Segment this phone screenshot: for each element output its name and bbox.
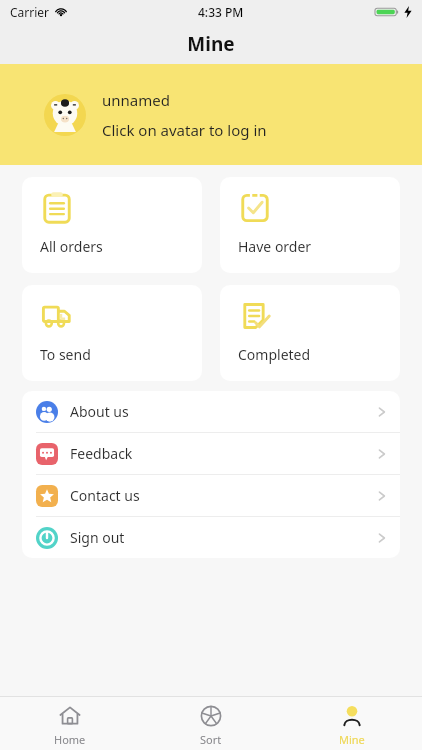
button[interactable]: Sign out (22, 517, 400, 558)
button[interactable]: Sort (140, 697, 281, 750)
staticText: 4:33 PM (198, 4, 244, 20)
staticText: Sign out (70, 528, 125, 547)
staticText: Home (54, 732, 86, 747)
button[interactable]: Mine (281, 697, 422, 750)
staticText: Sort (200, 732, 222, 747)
button[interactable]: Feedback (22, 433, 400, 474)
button[interactable]: Completed (220, 285, 400, 381)
staticText: Mine (339, 732, 365, 747)
staticText: Contact us (70, 486, 140, 505)
button[interactable]: Contact us (22, 475, 400, 516)
button[interactable]: All orders (22, 177, 202, 273)
button[interactable]: Home (0, 697, 140, 750)
button[interactable]: To send (22, 285, 202, 381)
staticText: About us (70, 402, 129, 421)
staticText: Carrier (10, 4, 50, 20)
staticText: Click on avatar to log in (102, 120, 267, 140)
button[interactable]: Avatar, tap to log in (44, 94, 86, 136)
staticText: Feedback (70, 444, 133, 463)
staticText: To send (40, 345, 91, 364)
staticText: Mine (187, 31, 235, 57)
staticText: All orders (40, 237, 103, 256)
button[interactable]: Have order (220, 177, 400, 273)
staticText: unnamed (102, 90, 170, 110)
button[interactable]: About us (22, 391, 400, 432)
button[interactable]: Avatar, tap to log in (0, 64, 422, 165)
staticText: Have order (238, 237, 312, 256)
staticText: Completed (238, 345, 311, 364)
